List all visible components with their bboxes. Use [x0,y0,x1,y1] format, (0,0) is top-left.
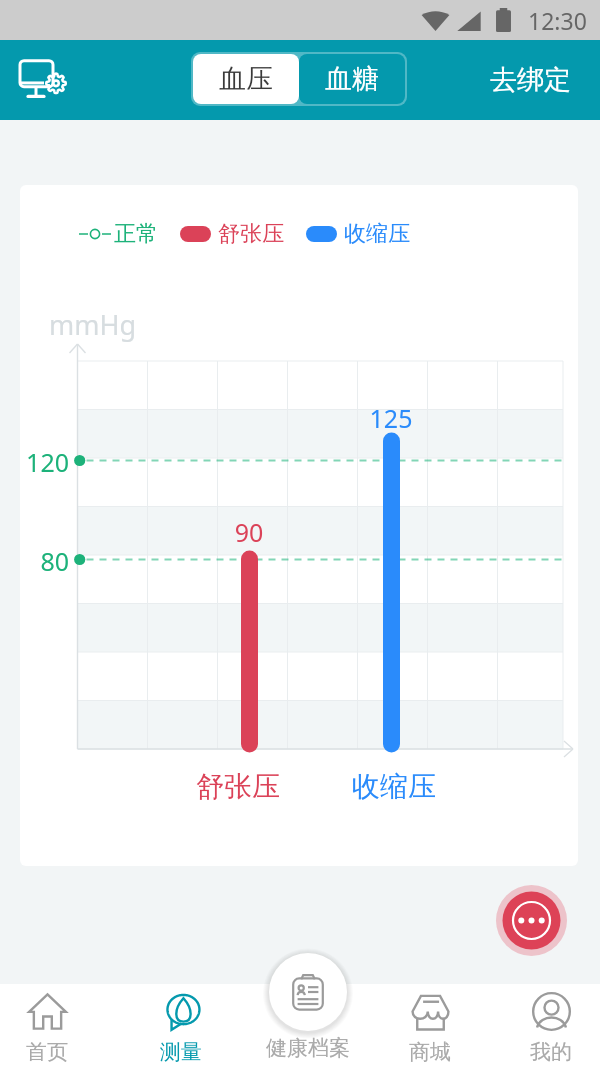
staticText: 120 [20,445,69,479]
staticText: 测量 [160,1039,202,1065]
staticText: 收缩压 [344,220,410,248]
staticText: 125 [364,401,418,435]
staticText: 舒张压 [218,220,284,248]
button[interactable]: 首页 [0,984,97,1067]
button[interactable]: 血糖 [299,54,405,104]
button[interactable]: 去绑定 [490,63,571,97]
staticText: 正常 [114,220,158,248]
staticText: 我的 [530,1039,572,1065]
staticText: 去绑定 [490,63,571,97]
staticText: 舒张压 [176,769,300,804]
staticText: mmHg [49,306,137,343]
button[interactable]: 血压 [193,54,299,104]
button[interactable]: Device settings [12,48,76,112]
staticText: 首页 [26,1039,68,1065]
staticText: 血压 [219,62,273,96]
staticText: 血糖 [325,62,379,96]
button[interactable]: More options [496,885,567,956]
staticText: 90 [219,515,279,549]
button[interactable]: 我的 [501,984,600,1067]
button[interactable]: 测量 [131,984,231,1067]
staticText: 12:30 [528,5,587,36]
staticText: 商城 [409,1039,451,1065]
staticText: 收缩压 [332,769,456,804]
button[interactable]: 商城 [380,984,480,1067]
staticText: 80 [20,544,69,578]
button[interactable]: 健康档案 [248,949,368,1067]
staticText: 健康档案 [266,1035,350,1061]
